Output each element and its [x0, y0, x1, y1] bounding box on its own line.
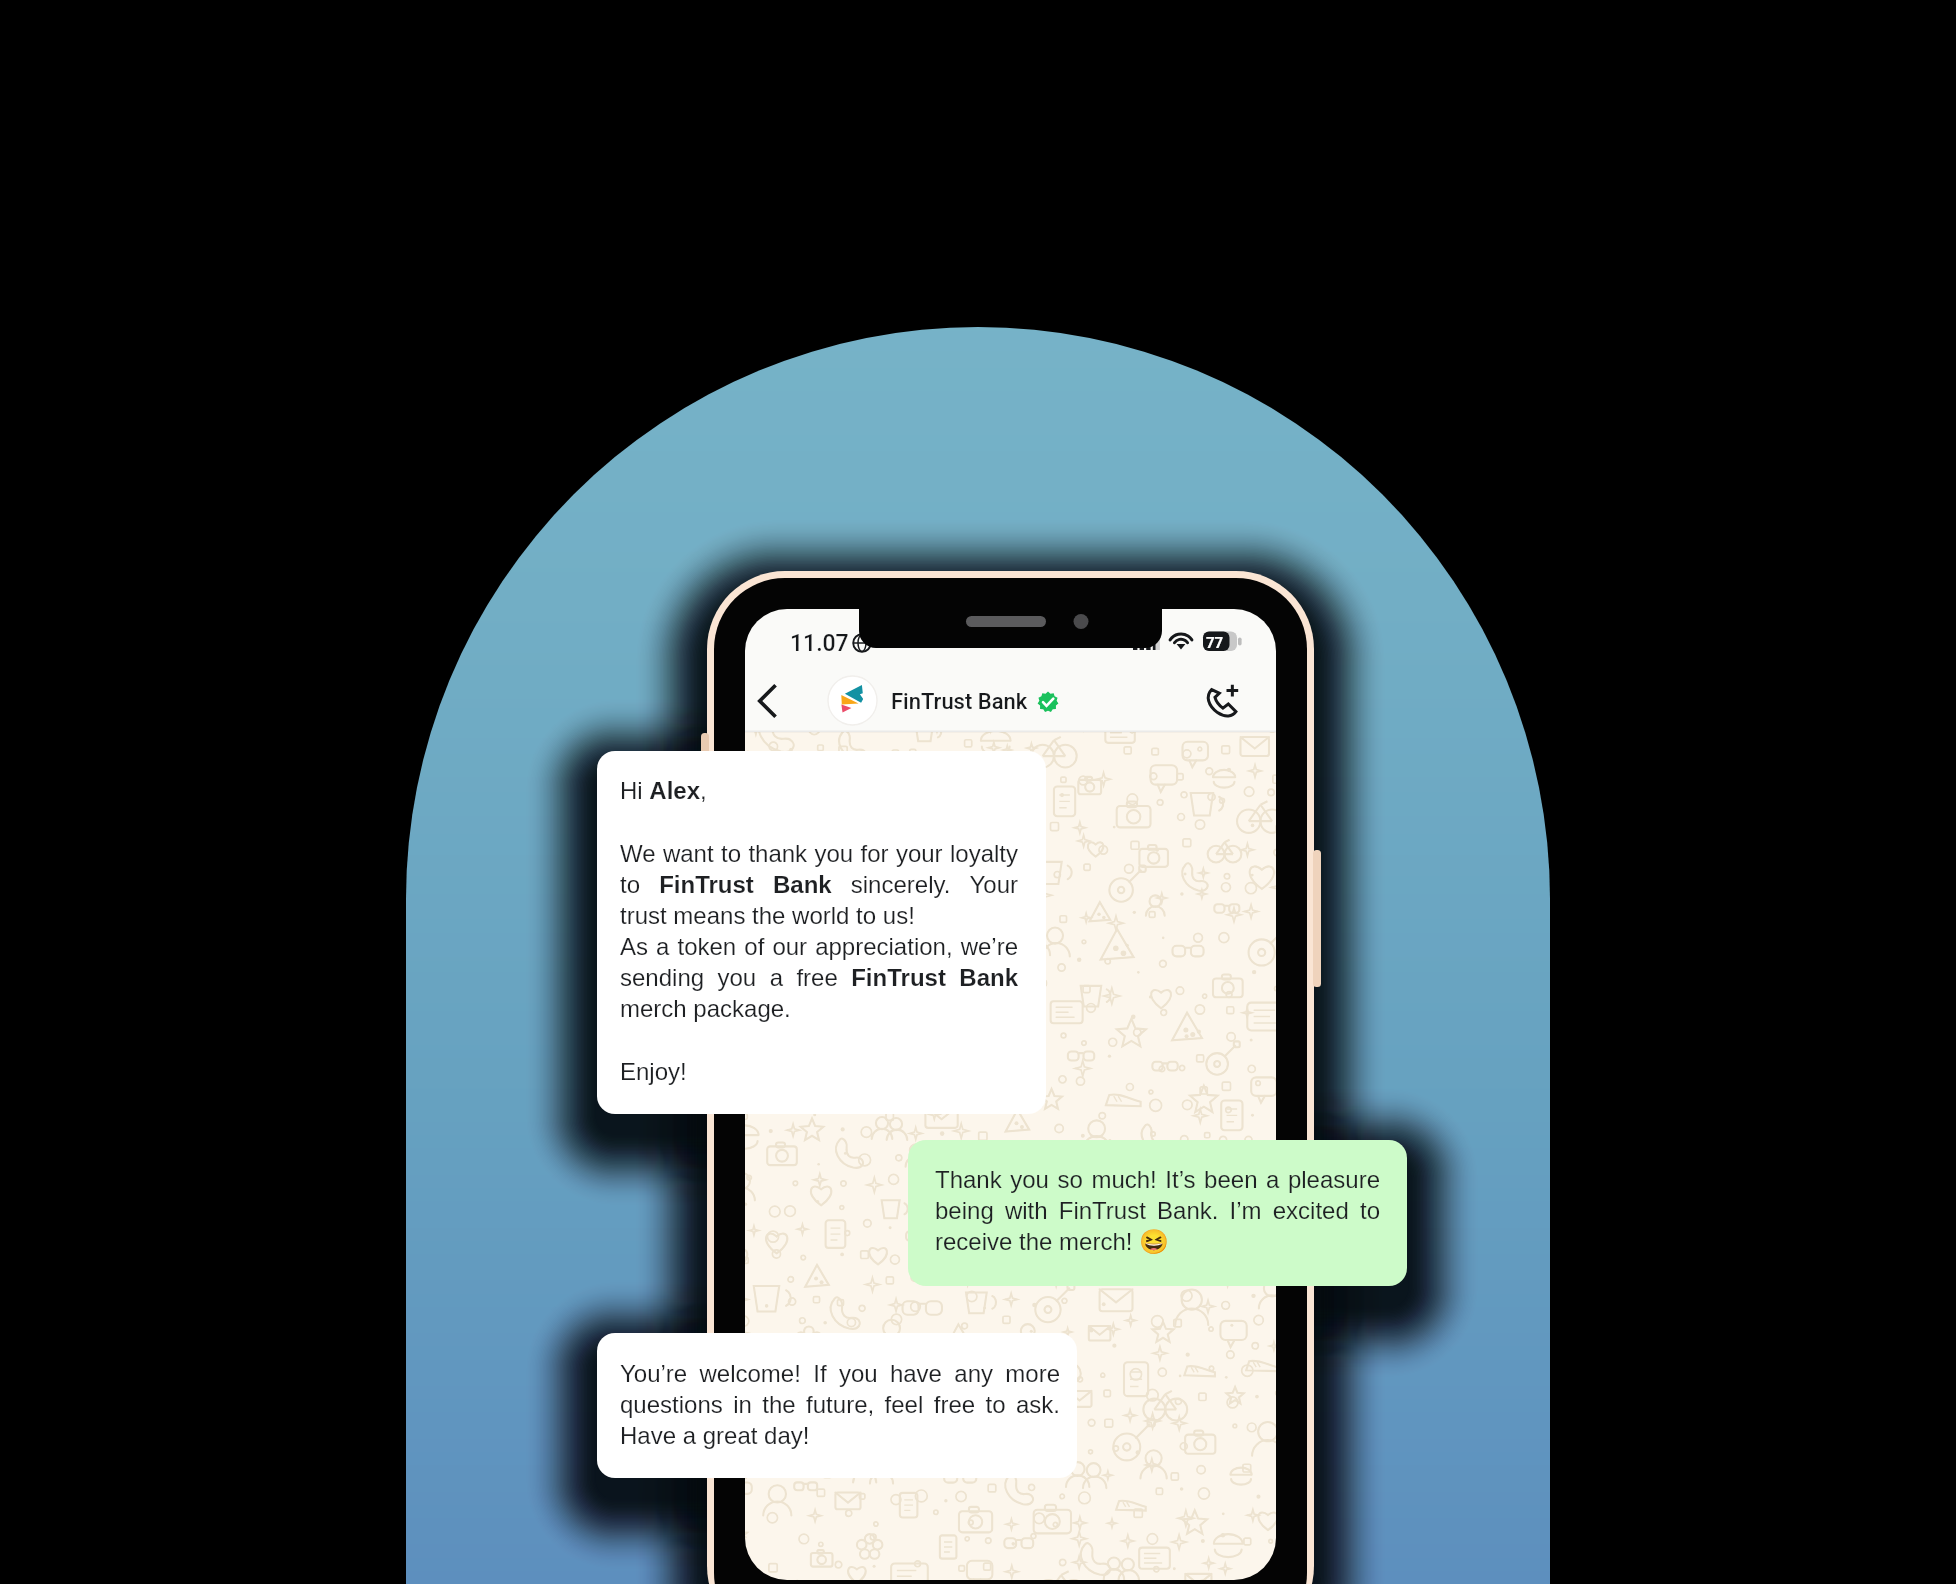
staticText: We want to thank you for your loyalty to…: [620, 840, 1018, 1022]
staticText: Hi Alex,: [620, 777, 707, 804]
button[interactable]: Hi Alex,: [597, 751, 1046, 1114]
button[interactable]: You’re welcome! If you have any more que…: [597, 1333, 1077, 1478]
button[interactable]: FinTrust Bank: [824, 672, 1074, 730]
staticText: Enjoy!: [620, 1058, 687, 1085]
button[interactable]: Back: [748, 677, 796, 725]
staticText: FinTrust Bank: [891, 689, 1028, 715]
button[interactable]: Thank you so much! It’s been a pleasure …: [908, 1140, 1407, 1286]
staticText: You’re welcome! If you have any more que…: [620, 1360, 1060, 1449]
staticText: Thank you so much! It’s been a pleasure …: [935, 1166, 1380, 1256]
button[interactable]: Add call: [1196, 674, 1248, 726]
staticText: 11.07: [790, 630, 849, 657]
staticText: 77: [1206, 634, 1224, 652]
